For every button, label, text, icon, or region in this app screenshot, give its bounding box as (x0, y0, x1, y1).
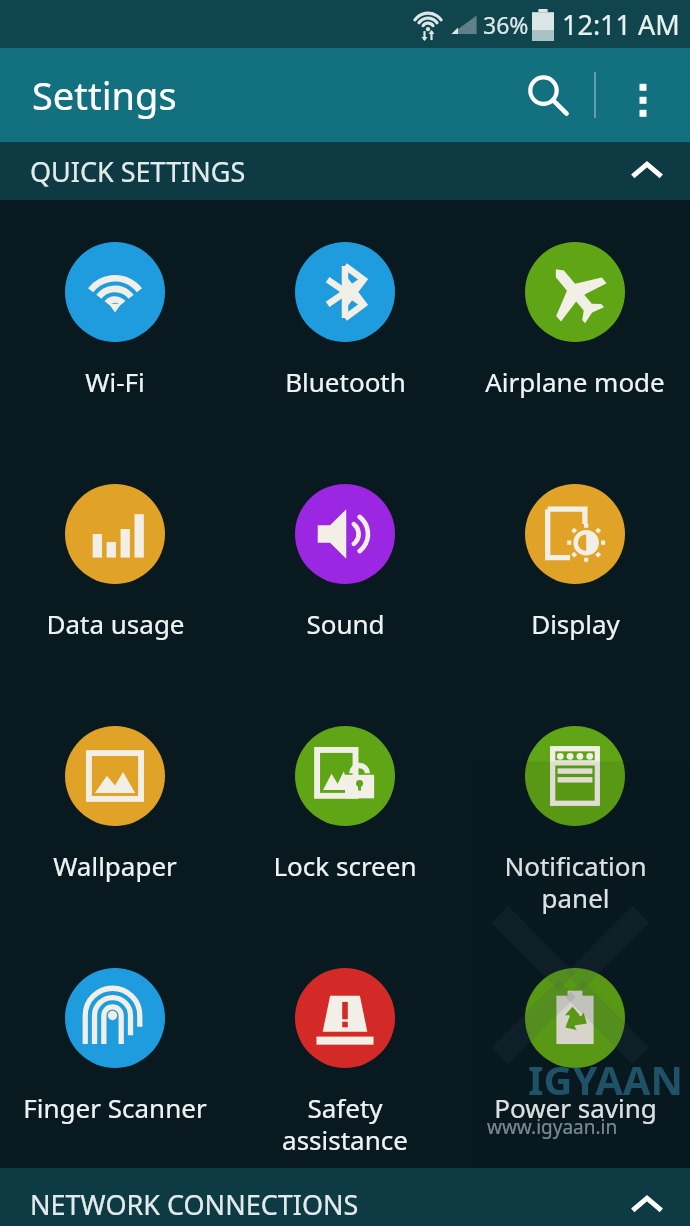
button[interactable]: Sound (230, 442, 460, 684)
staticText: Lock screen (273, 848, 417, 883)
staticText: 36% (483, 9, 529, 40)
button[interactable]: Data usage (0, 442, 230, 684)
button[interactable]: NETWORK CONNECTIONS (0, 1168, 690, 1226)
staticText: 12:11 AM (562, 6, 680, 43)
staticText: Wallpaper (53, 848, 177, 883)
staticText: Notification panel (504, 848, 647, 916)
button[interactable]: Finger Scanner (0, 926, 230, 1168)
staticText: Display (531, 606, 620, 641)
staticText: Bluetooth (285, 364, 406, 399)
staticText: Power saving (494, 1090, 657, 1125)
staticText: Data usage (46, 606, 185, 641)
staticText: Airplane mode (485, 364, 665, 399)
staticText: Wi-Fi (85, 364, 145, 399)
button[interactable]: Search (500, 48, 594, 142)
staticText: Safety assistance (282, 1090, 408, 1158)
staticText: QUICK SETTINGS (30, 153, 246, 190)
staticText: Settings (32, 69, 177, 121)
staticText: Finger Scanner (23, 1090, 207, 1125)
button[interactable]: More options (596, 48, 690, 142)
button[interactable]: Wi-Fi (0, 200, 230, 442)
button[interactable]: Notification panel (460, 684, 690, 926)
button[interactable]: Lock screen (230, 684, 460, 926)
staticText: www.igyaan.in (487, 1114, 618, 1140)
staticText: IGYAAN (528, 1052, 684, 1106)
button[interactable]: QUICK SETTINGS (0, 142, 690, 200)
staticText: NETWORK CONNECTIONS (30, 1186, 359, 1223)
button[interactable]: Power saving (460, 926, 690, 1168)
button[interactable]: Safety assistance (230, 926, 460, 1168)
button[interactable]: Airplane mode (460, 200, 690, 442)
button[interactable]: Bluetooth (230, 200, 460, 442)
button[interactable]: Display (460, 442, 690, 684)
staticText: Sound (306, 606, 385, 641)
button[interactable]: Wallpaper (0, 684, 230, 926)
